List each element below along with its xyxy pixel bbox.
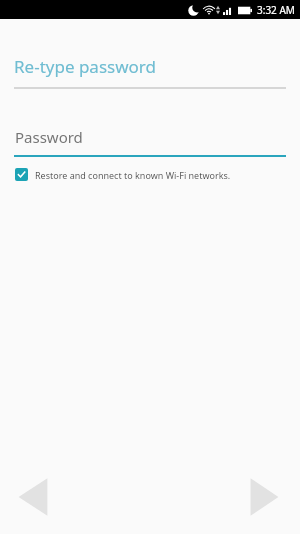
button[interactable]: Restore and connect to known Wi-Fi netwo… — [15, 166, 231, 183]
staticText: Restore and connect to known Wi-Fi netwo… — [35, 169, 231, 181]
staticText: Password — [15, 127, 83, 147]
staticText: 3:32 AM — [257, 3, 295, 17]
button[interactable]: Next — [236, 469, 292, 525]
staticText: Re-type password — [14, 55, 156, 78]
button[interactable]: Back — [5, 469, 61, 525]
